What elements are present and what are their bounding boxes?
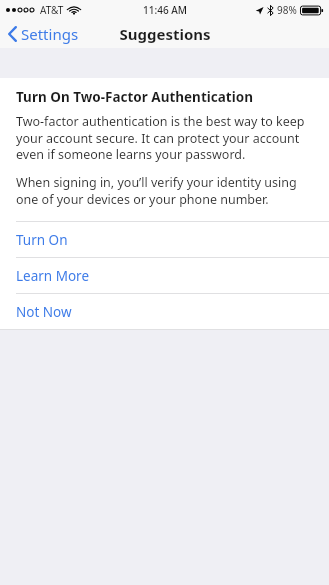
staticText: Suggestions bbox=[119, 24, 211, 44]
staticText: Two-factor authentication is the best wa… bbox=[16, 113, 313, 162]
staticText: Not Now bbox=[16, 303, 72, 321]
staticText: 11:46 AM bbox=[143, 3, 187, 17]
button[interactable]: Back bbox=[0, 21, 87, 47]
button[interactable]: Turn On bbox=[0, 222, 329, 257]
staticText: AT&T bbox=[40, 3, 64, 17]
button[interactable]: Learn More bbox=[0, 258, 329, 293]
staticText: Settings bbox=[21, 24, 79, 44]
staticText: 98% bbox=[277, 3, 297, 17]
other: Back bbox=[8, 26, 17, 42]
staticText: Turn On Two-Factor Authentication bbox=[16, 88, 253, 106]
staticText: Turn On bbox=[16, 231, 68, 249]
staticText: When signing in, you’ll verify your iden… bbox=[16, 174, 313, 207]
button[interactable]: Not Now bbox=[0, 294, 329, 329]
staticText: Learn More bbox=[16, 267, 90, 285]
